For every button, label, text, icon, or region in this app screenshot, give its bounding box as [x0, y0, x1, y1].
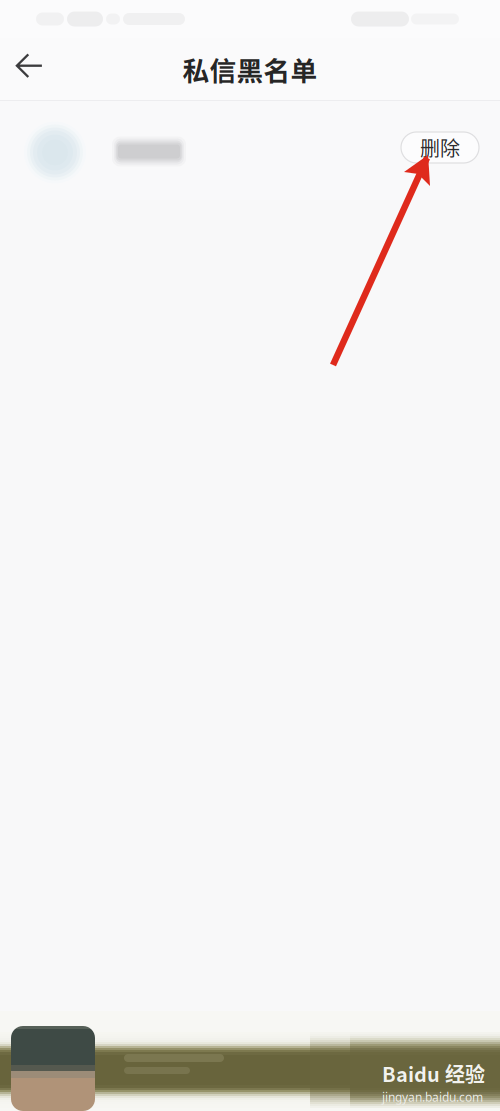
staticText: 私信黑名单 [182, 50, 317, 88]
staticText: 删除 [420, 133, 460, 162]
staticText: Baidu 经验 [382, 1059, 485, 1088]
staticText: jingyan.baidu.com [382, 1089, 483, 1105]
button[interactable]: 返回 [0, 35, 58, 97]
button[interactable]: 删除 [401, 132, 479, 163]
